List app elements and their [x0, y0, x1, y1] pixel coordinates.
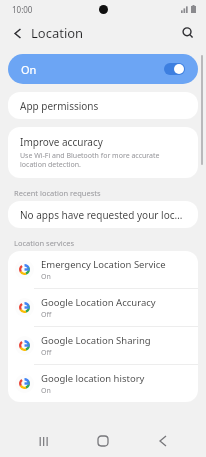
staticText: Off [41, 310, 52, 320]
button[interactable]: Home [90, 428, 116, 454]
staticText: 10:00 [12, 4, 33, 15]
button[interactable]: Improve accuracy [8, 127, 198, 178]
button[interactable]: App permissions [8, 92, 198, 119]
staticText: Improve accuracy [20, 135, 103, 149]
button[interactable]: Google location history [8, 365, 198, 402]
button[interactable]: Search [176, 21, 200, 45]
button[interactable]: Emergency Location Service [8, 251, 198, 288]
staticText: On [21, 62, 37, 77]
staticText: Use Wi-Fi and Bluetooth for more accurat… [20, 151, 186, 169]
staticText: On [41, 386, 51, 396]
button[interactable]: On [8, 54, 198, 84]
button[interactable]: Back [6, 21, 30, 45]
staticText: Recent location requests [14, 188, 101, 198]
staticText: No apps have requested your location re.… [20, 208, 186, 222]
staticText: Off [41, 348, 52, 358]
button[interactable]: No apps have requested your location re.… [8, 201, 198, 228]
button[interactable]: Google Location Sharing [8, 327, 198, 364]
staticText: Location services [14, 238, 75, 248]
staticText: On [41, 272, 51, 282]
staticText: Emergency Location Service [41, 258, 166, 271]
staticText: Google location history [41, 372, 145, 385]
button[interactable]: Recents [30, 428, 56, 454]
staticText: Google Location Accuracy [41, 296, 156, 309]
staticText: App permissions [20, 99, 99, 113]
staticText: Google Location Sharing [41, 334, 151, 347]
button[interactable]: Google Location Accuracy [8, 289, 198, 326]
button[interactable]: Back [150, 428, 176, 454]
staticText: Location [31, 24, 84, 42]
